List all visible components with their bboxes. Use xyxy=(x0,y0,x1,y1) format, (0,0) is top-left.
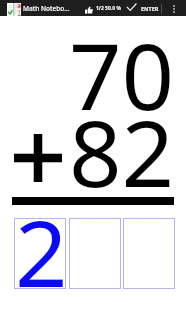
staticText: 2 xyxy=(15,189,68,310)
staticText: 70 xyxy=(69,12,175,137)
staticText: 1/2 50.0 % xyxy=(96,5,121,12)
button[interactable] xyxy=(123,218,175,289)
staticText: ENTER xyxy=(141,5,159,12)
staticText: Math Notebo… xyxy=(23,4,70,13)
button[interactable]: ENTER xyxy=(126,0,159,16)
button[interactable]: Score xyxy=(85,6,93,14)
button[interactable] xyxy=(69,218,121,289)
button[interactable] xyxy=(14,218,66,289)
button[interactable]: More options xyxy=(172,4,176,14)
staticText: 82 xyxy=(69,89,175,214)
button[interactable]: Math Notebook xyxy=(7,3,21,16)
